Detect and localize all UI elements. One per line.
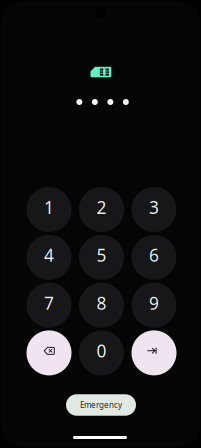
button[interactable]: 5 — [79, 235, 124, 280]
staticText: 8 — [96, 291, 106, 314]
button[interactable]: Emergency — [66, 394, 136, 416]
button[interactable]: 9 — [131, 283, 176, 328]
button[interactable]: 0 — [79, 330, 124, 375]
staticText: 7 — [44, 291, 54, 314]
staticText: 2 — [96, 196, 106, 219]
staticText: 6 — [149, 244, 159, 267]
button[interactable]: Enter — [131, 330, 176, 375]
button[interactable]: 2 — [79, 187, 124, 232]
button[interactable]: 7 — [26, 283, 71, 328]
button[interactable]: 4 — [26, 235, 71, 280]
button[interactable]: 1 — [26, 187, 71, 232]
button[interactable]: 6 — [131, 235, 176, 280]
button[interactable]: 8 — [79, 283, 124, 328]
staticText: 0 — [96, 339, 106, 362]
staticText: 1 — [44, 196, 54, 219]
button[interactable]: 3 — [131, 187, 176, 232]
staticText: 4 — [44, 244, 54, 267]
staticText: Emergency — [80, 400, 122, 410]
button[interactable]: Delete — [26, 330, 71, 375]
staticText: 5 — [96, 244, 106, 267]
staticText: 3 — [149, 196, 159, 219]
staticText: 9 — [149, 291, 159, 314]
